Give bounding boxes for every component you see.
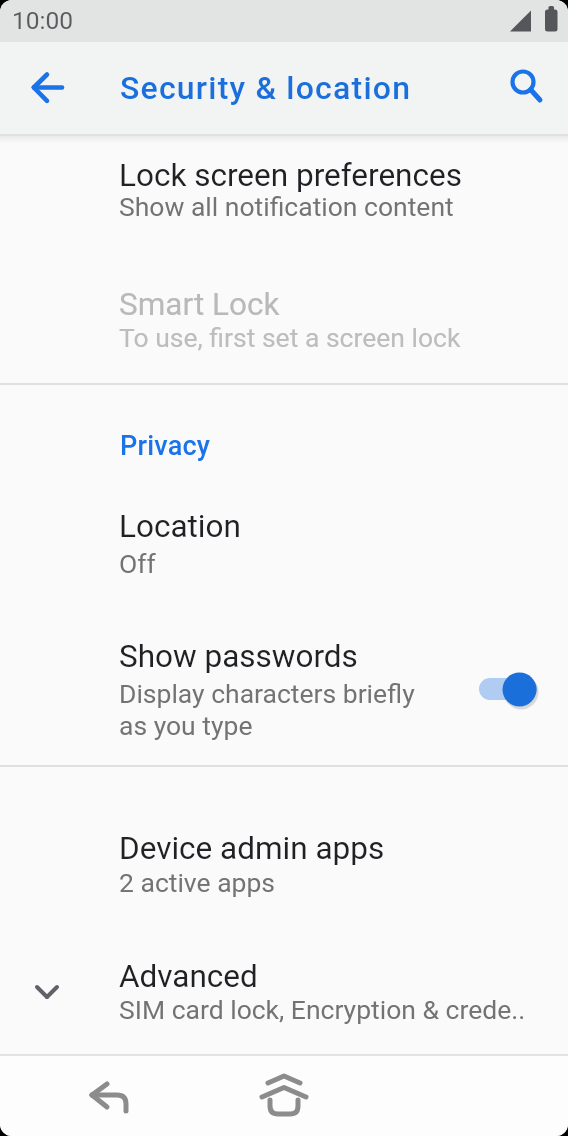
staticText: SIM card lock, Encryption & crede..	[119, 994, 526, 1025]
staticText: Location	[119, 508, 241, 545]
button[interactable]: Location	[0, 489, 568, 600]
button[interactable]: Smart Lock	[0, 266, 568, 383]
staticText: Show all notification content	[119, 191, 454, 222]
staticText: To use, first set a screen lock	[119, 322, 461, 353]
button[interactable]	[254, 1066, 314, 1126]
staticText: 2 active apps	[119, 867, 276, 898]
button[interactable]	[80, 1066, 140, 1126]
button[interactable]: Device admin apps	[0, 808, 568, 921]
button[interactable]: Lock screen preferences	[0, 136, 568, 266]
staticText: Display characters briefly as you type	[119, 678, 415, 742]
button[interactable]	[495, 56, 551, 112]
staticText: 10:00	[12, 6, 74, 35]
staticText: Device admin apps	[119, 830, 385, 867]
staticText: Advanced	[119, 958, 258, 995]
staticText: Security & location	[120, 69, 412, 107]
staticText: Privacy	[120, 430, 211, 462]
staticText: Show passwords	[119, 638, 358, 675]
button[interactable]	[20, 60, 76, 116]
staticText: Off	[119, 548, 156, 579]
button[interactable]: Advanced	[0, 937, 568, 1047]
staticText: Smart Lock	[119, 286, 280, 323]
staticText: Lock screen preferences	[119, 157, 462, 194]
button[interactable]: Show passwords	[0, 618, 568, 765]
